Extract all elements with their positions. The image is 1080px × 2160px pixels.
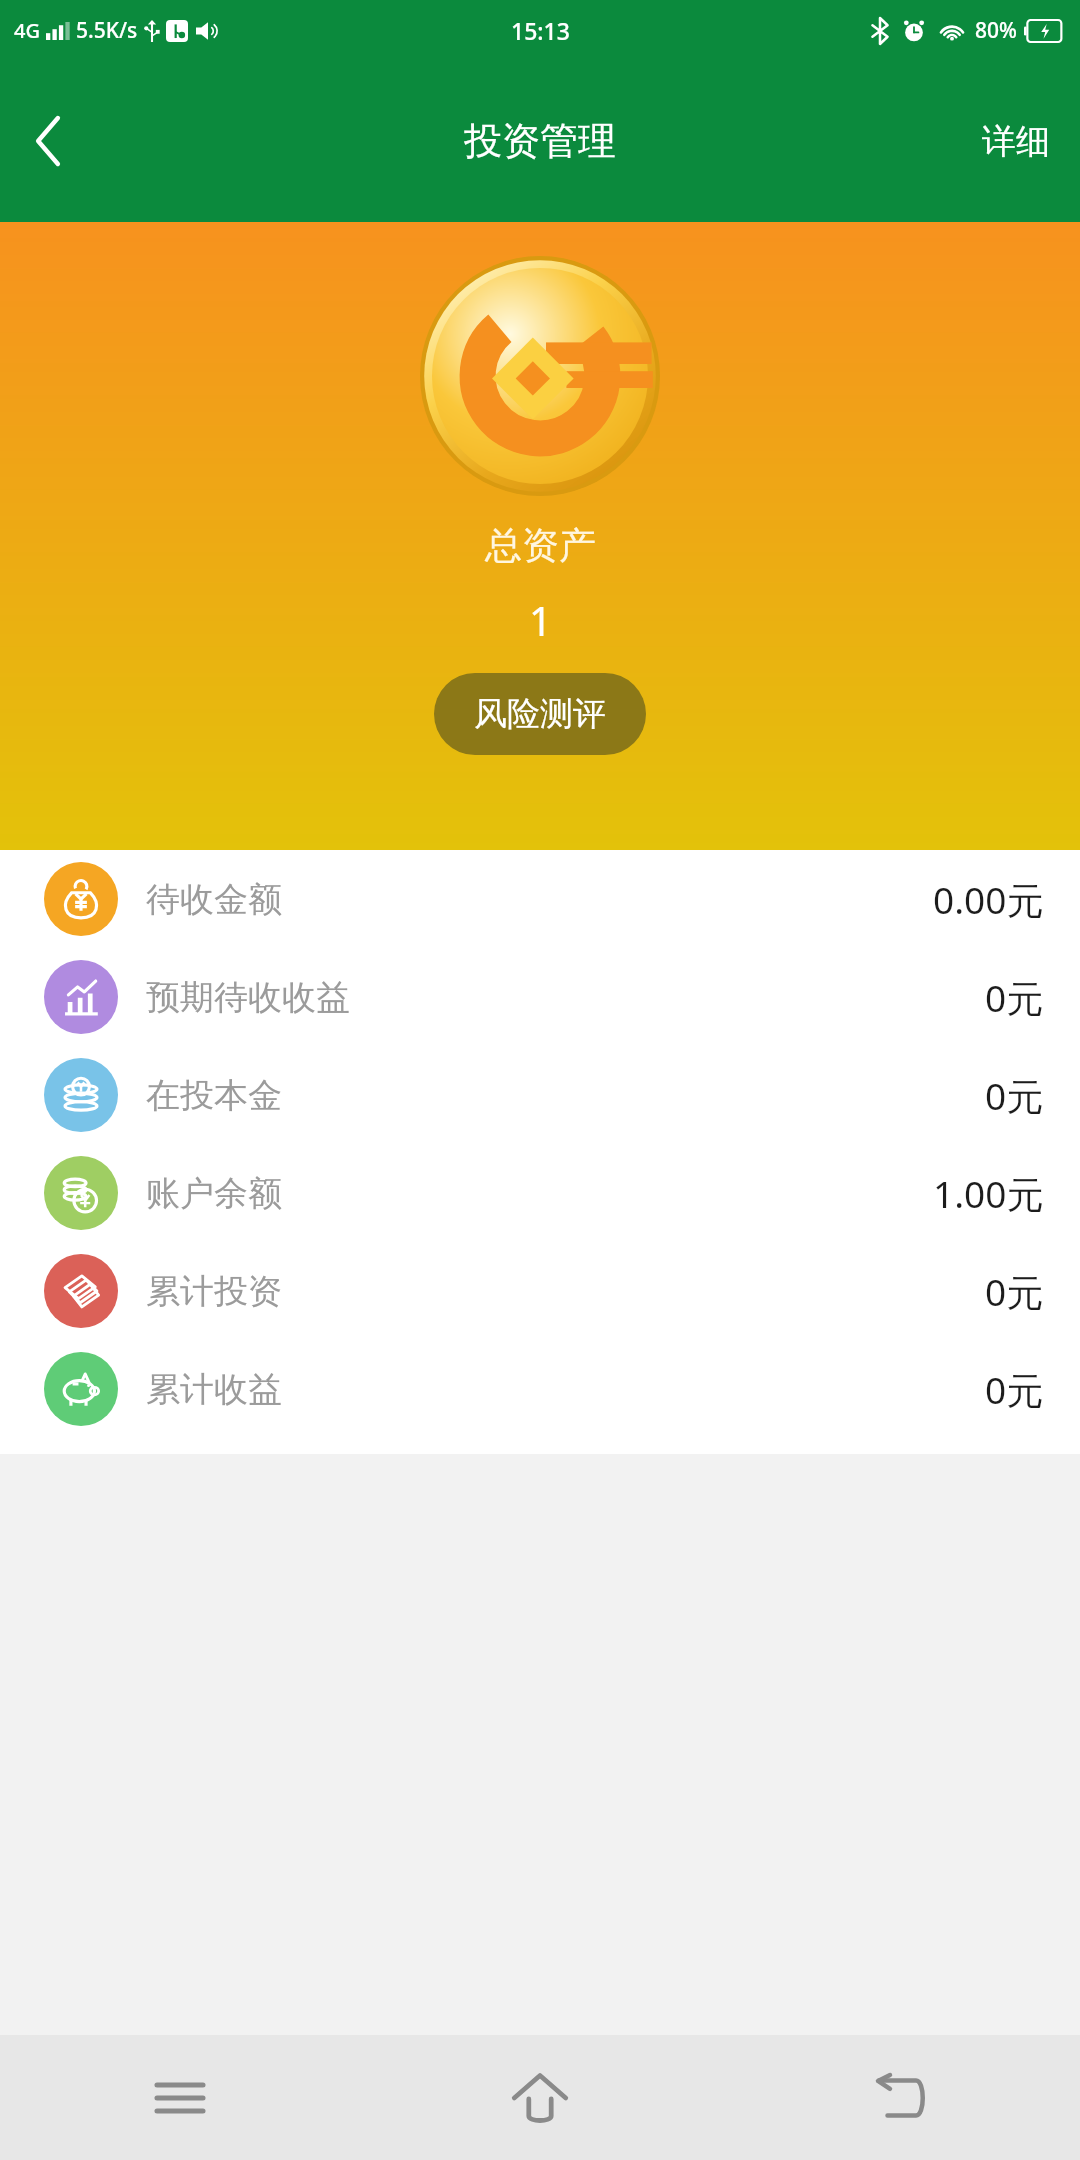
staticText: 累计投资 (146, 1270, 282, 1313)
staticText: 1.00元 (933, 1168, 1044, 1219)
staticText: 0元 (985, 1364, 1044, 1415)
staticText: 预期待收收益 (146, 976, 350, 1019)
button[interactable]: 在投本金 (0, 1046, 1080, 1144)
button[interactable]: Back (720, 2035, 1080, 2160)
staticText: 待收金额 (146, 878, 282, 921)
button[interactable]: 详细 (952, 98, 1080, 185)
button[interactable]: 风险测评 (434, 673, 646, 755)
staticText: 5.5K/s (76, 16, 138, 45)
staticText: 详细 (982, 120, 1050, 163)
staticText: 0元 (985, 972, 1044, 1023)
staticText: 账户余额 (146, 1172, 282, 1215)
staticText: 4G (14, 17, 40, 44)
button[interactable]: 账户余额 (0, 1144, 1080, 1242)
staticText: 0.00元 (933, 874, 1044, 925)
button[interactable]: Home (360, 2035, 720, 2160)
staticText: 15:13 (511, 15, 570, 46)
button[interactable]: Back (0, 93, 96, 189)
button[interactable]: 待收金额 (0, 850, 1080, 948)
button[interactable]: 累计收益 (0, 1340, 1080, 1438)
button[interactable]: Menu (0, 2035, 360, 2160)
staticText: 累计收益 (146, 1368, 282, 1411)
staticText: 投资管理 (464, 117, 616, 165)
staticText: 0元 (985, 1266, 1044, 1317)
staticText: 风险测评 (474, 693, 606, 735)
button[interactable]: 预期待收收益 (0, 948, 1080, 1046)
staticText: 0元 (985, 1070, 1044, 1121)
staticText: 80% (975, 16, 1017, 45)
staticText: 总资产 (485, 522, 596, 569)
staticText: 1 (529, 593, 552, 647)
staticText: 在投本金 (146, 1074, 282, 1117)
button[interactable]: 累计投资 (0, 1242, 1080, 1340)
